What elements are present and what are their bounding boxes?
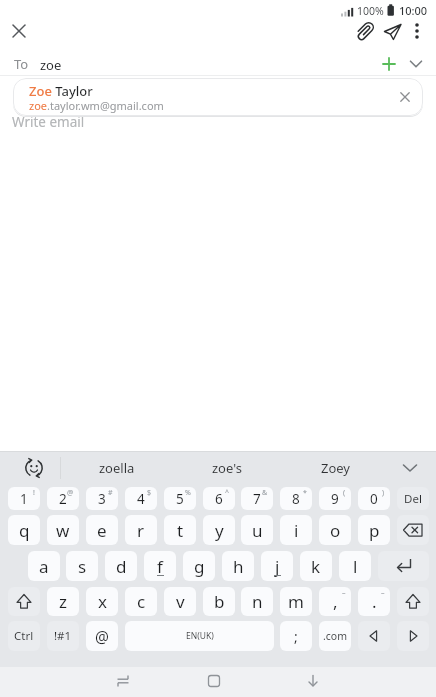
button[interactable]: EN(UK): [125, 621, 274, 651]
staticText: Write email: [12, 113, 85, 131]
button[interactable]: x: [86, 587, 118, 616]
button[interactable]: [378, 551, 429, 581]
staticText: .com: [323, 629, 348, 643]
staticText: o: [330, 519, 341, 542]
button[interactable]: m: [280, 587, 312, 616]
button[interactable]: i: [280, 515, 312, 545]
button[interactable]: j: [261, 551, 293, 581]
button[interactable]: zoella: [62, 452, 172, 484]
button[interactable]: .: [358, 587, 390, 616]
button[interactable]: 0: [358, 487, 390, 510]
button[interactable]: u: [241, 515, 273, 545]
staticText: –: [342, 588, 346, 598]
button[interactable]: g: [183, 551, 215, 581]
button[interactable]: !#1: [47, 621, 79, 651]
staticText: e: [97, 519, 107, 542]
button[interactable]: [404, 17, 430, 45]
button[interactable]: l: [339, 551, 371, 581]
button[interactable]: [109, 667, 137, 695]
button[interactable]: p: [358, 515, 390, 545]
staticText: h: [233, 555, 244, 578]
staticText: 2: [59, 490, 67, 508]
staticText: %: [185, 488, 191, 498]
button[interactable]: f: [144, 551, 176, 581]
button[interactable]: [397, 587, 429, 616]
button[interactable]: b: [203, 587, 235, 616]
button[interactable]: r: [125, 515, 157, 545]
button[interactable]: [396, 455, 424, 481]
button[interactable]: k: [300, 551, 332, 581]
staticText: ,: [333, 590, 338, 613]
staticText: *: [303, 488, 307, 498]
staticText: EN(UK): [186, 630, 214, 642]
button[interactable]: y: [203, 515, 235, 545]
button[interactable]: 4: [125, 487, 157, 510]
button[interactable]: Del: [397, 487, 429, 510]
button[interactable]: Zoe Taylor: [13, 78, 423, 116]
staticText: c: [137, 590, 146, 613]
button[interactable]: [379, 17, 407, 45]
button[interactable]: Zoey: [282, 452, 390, 484]
button[interactable]: q: [8, 515, 40, 545]
button[interactable]: ,: [319, 587, 351, 616]
button[interactable]: e: [86, 515, 118, 545]
button[interactable]: s: [66, 551, 98, 581]
button[interactable]: a: [28, 551, 60, 581]
button[interactable]: Ctrl: [8, 621, 40, 651]
staticText: Ctrl: [14, 628, 34, 644]
staticText: 3: [98, 490, 106, 508]
button[interactable]: [375, 50, 403, 78]
button[interactable]: n: [241, 587, 273, 616]
button[interactable]: v: [164, 587, 196, 616]
staticText: 5: [176, 490, 184, 508]
button[interactable]: [397, 621, 429, 651]
staticText: $: [147, 488, 152, 498]
staticText: Zoe Taylor: [29, 82, 93, 100]
staticText: 7: [253, 490, 261, 508]
staticText: v: [176, 590, 185, 613]
staticText: a: [39, 555, 49, 578]
button[interactable]: @: [86, 621, 118, 651]
staticText: g: [194, 555, 205, 578]
button[interactable]: 1: [8, 487, 40, 510]
button[interactable]: ;: [280, 621, 312, 651]
staticText: zoe: [40, 56, 62, 74]
button[interactable]: o: [319, 515, 351, 545]
button[interactable]: [397, 515, 429, 545]
button[interactable]: [351, 17, 379, 45]
button[interactable]: c: [125, 587, 157, 616]
button[interactable]: 5: [164, 487, 196, 510]
button[interactable]: 9: [319, 487, 351, 510]
staticText: (: [343, 488, 346, 498]
button[interactable]: t: [164, 515, 196, 545]
staticText: s: [78, 555, 87, 578]
button[interactable]: [8, 587, 40, 616]
button[interactable]: w: [47, 515, 79, 545]
button[interactable]: 6: [203, 487, 235, 510]
staticText: 4: [137, 490, 145, 508]
button[interactable]: [5, 17, 33, 45]
button[interactable]: zoe's: [172, 452, 282, 484]
button[interactable]: 2: [47, 487, 79, 510]
button[interactable]: 8: [280, 487, 312, 510]
staticText: k: [311, 555, 321, 578]
button[interactable]: z: [47, 587, 79, 616]
staticText: n: [252, 590, 263, 613]
button[interactable]: [391, 83, 419, 111]
staticText: ): [382, 488, 385, 498]
button[interactable]: [358, 621, 390, 651]
button[interactable]: 7: [241, 487, 273, 510]
button[interactable]: d: [105, 551, 137, 581]
staticText: t: [177, 519, 184, 542]
button[interactable]: [200, 667, 228, 695]
staticText: ;: [294, 627, 298, 646]
button[interactable]: .com: [319, 621, 351, 651]
staticText: .: [372, 590, 377, 613]
button[interactable]: [299, 667, 327, 695]
button[interactable]: [402, 50, 430, 78]
button[interactable]: h: [222, 551, 254, 581]
button[interactable]: 3: [86, 487, 118, 510]
button[interactable]: [20, 455, 48, 481]
staticText: i: [294, 519, 299, 542]
staticText: 100%: [357, 4, 384, 18]
